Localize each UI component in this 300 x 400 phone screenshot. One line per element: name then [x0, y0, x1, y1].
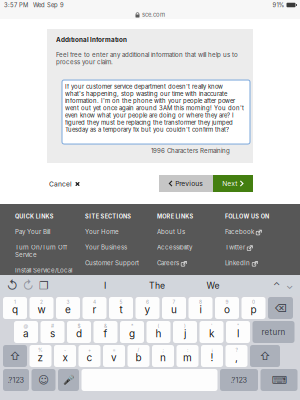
button[interactable]: 2 [29, 297, 53, 319]
button[interactable]: Shift [250, 345, 280, 367]
button[interactable]: Redo [20, 276, 36, 294]
button[interactable]: Delete [268, 297, 293, 319]
button[interactable]: # [40, 321, 64, 343]
staticText: f [103, 327, 107, 340]
button[interactable]: + [78, 345, 100, 367]
button[interactable]: 3 [56, 297, 80, 319]
button[interactable]: ( [146, 321, 170, 343]
staticText: Previous [175, 179, 203, 188]
button[interactable]: Previous field [270, 276, 283, 294]
staticText: o [224, 303, 230, 316]
staticText: 6 [146, 299, 149, 305]
staticText: Feel free to enter any additional inform… [56, 51, 238, 66]
button[interactable]: return [252, 321, 294, 343]
button[interactable]: & [93, 321, 117, 343]
staticText: - [64, 347, 66, 353]
staticText: Additional Information [56, 36, 127, 44]
button[interactable]: Customer Support [85, 259, 155, 267]
button[interactable]: ¡ [201, 345, 223, 367]
staticText: Wed Sep 9 [33, 1, 64, 9]
button[interactable]: Dictation [58, 369, 79, 391]
button[interactable]: We [185, 276, 241, 294]
button[interactable]: ; [152, 345, 174, 367]
staticText: " [237, 323, 239, 329]
button[interactable]: Paste [36, 276, 52, 294]
button[interactable]: Install Service/Local [15, 267, 83, 274]
staticText: d [76, 327, 82, 340]
button[interactable]: .?123 [3, 369, 29, 391]
button[interactable]: 0 [241, 297, 265, 319]
button[interactable]: Next [213, 175, 253, 192]
staticText: The [149, 280, 165, 291]
button[interactable]: Turn On/Turn Off Service [15, 244, 83, 258]
button[interactable]: Accessibility [157, 244, 223, 251]
button[interactable]: .?123 [220, 369, 258, 391]
staticText: ⌄ [286, 280, 293, 291]
button[interactable]: * [120, 321, 144, 343]
staticText: Customer Support [85, 259, 139, 267]
button[interactable]: About Us [157, 228, 223, 235]
button[interactable]: @ [14, 321, 38, 343]
button[interactable]: - [54, 345, 76, 367]
staticText: ; [162, 347, 163, 353]
staticText: ⌫ [274, 301, 287, 314]
staticText: ↻ [22, 278, 33, 293]
button[interactable]: ' [199, 321, 223, 343]
staticText: m [183, 351, 192, 364]
staticText: Next [222, 179, 237, 188]
staticText: Your Business [85, 244, 127, 251]
staticText [146, 365, 152, 395]
button[interactable]: Facebook [225, 228, 291, 235]
button[interactable]: % [29, 345, 51, 367]
button[interactable]: Your Home [85, 228, 155, 235]
button[interactable]: Cancel [49, 176, 87, 192]
staticText: Install Service/Local [15, 267, 72, 274]
button[interactable]: / [127, 345, 149, 367]
staticText: return [261, 327, 285, 337]
button[interactable]: : [176, 345, 198, 367]
button[interactable]: 6 [135, 297, 159, 319]
staticText: s [50, 327, 55, 340]
button[interactable]: 1 [3, 297, 27, 319]
staticText: @ [23, 323, 28, 329]
staticText: z [37, 351, 43, 364]
button[interactable]: 7 [162, 297, 186, 319]
button[interactable]: ? [225, 345, 247, 367]
staticText: = [112, 347, 115, 353]
button[interactable]: " [226, 321, 250, 343]
staticText: Cancel [49, 180, 72, 188]
button[interactable]: The [129, 276, 185, 294]
button[interactable]: Shift [3, 345, 27, 367]
button[interactable]: Undo [4, 276, 20, 294]
button[interactable]: Careers [157, 259, 223, 267]
staticText: & [104, 323, 107, 329]
button[interactable]: Previous [159, 175, 213, 192]
button[interactable]: 5 [109, 297, 133, 319]
button[interactable]: ) [173, 321, 197, 343]
staticText: w [37, 303, 45, 316]
staticText: 9 [225, 299, 228, 305]
button[interactable]: I [81, 276, 129, 294]
button[interactable]: 4 [82, 297, 106, 319]
button[interactable]: $ [67, 321, 91, 343]
button[interactable]: Twitter [225, 244, 291, 251]
staticText: We [206, 280, 219, 291]
staticText: b [135, 351, 141, 364]
button[interactable]: = [103, 345, 125, 367]
staticText: ! [210, 351, 213, 364]
button[interactable]: Next field [283, 276, 296, 294]
button[interactable]: Pay Your Bill [15, 228, 83, 235]
button[interactable]: Hide keyboard [260, 369, 297, 391]
button[interactable]: Emoji [31, 369, 55, 391]
staticText: h [155, 327, 161, 340]
staticText: j [184, 327, 186, 340]
staticText: Facebook [225, 228, 254, 235]
staticText: 3:57 PM [4, 1, 28, 9]
button[interactable]: Your Business [85, 244, 155, 251]
button[interactable]: 9 [215, 297, 239, 319]
button[interactable]: 8 [188, 297, 212, 319]
button[interactable]: LinkedIn [225, 259, 291, 267]
staticText: a [23, 327, 29, 340]
staticText: 8 [199, 299, 202, 305]
